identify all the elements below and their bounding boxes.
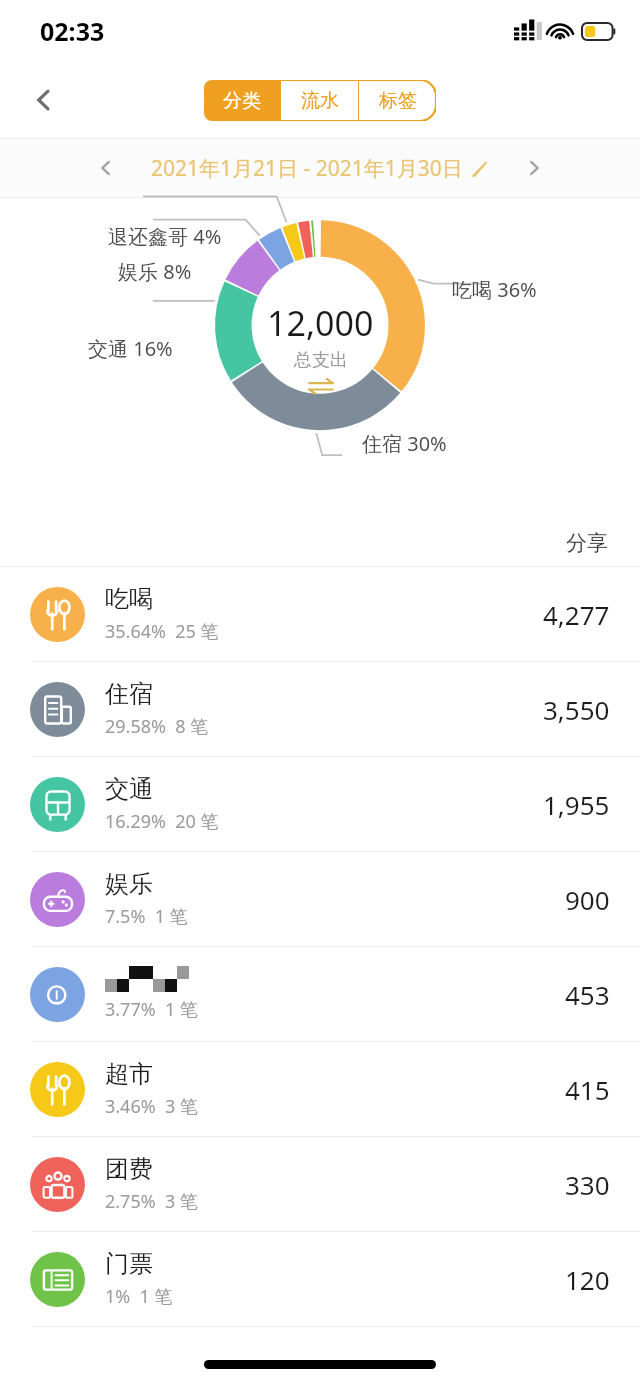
staticText: 3.46% 3 笔 <box>105 1094 199 1119</box>
staticText: 1% 1 笔 <box>105 1284 173 1309</box>
button[interactable]: 标签 <box>359 80 436 121</box>
button[interactable]: 门票 <box>0 1232 640 1326</box>
button[interactable]: 3.77% 1 笔 <box>0 947 640 1041</box>
staticText: 1,955 <box>543 787 610 822</box>
staticText: 02:33 <box>40 14 105 48</box>
staticText: 吃喝 36% <box>452 276 537 303</box>
button[interactable]: 2021年1月21日 - 2021年1月30日 <box>151 154 489 183</box>
staticText: 3.77% 1 笔 <box>105 997 199 1022</box>
staticText: 分类 <box>223 89 261 113</box>
staticText: 16.29% 20 笔 <box>105 809 219 834</box>
button[interactable]: 分享 <box>566 530 608 556</box>
staticText: 团费 <box>105 1154 153 1184</box>
staticText: 330 <box>565 1167 610 1202</box>
staticText: 7.5% 1 笔 <box>105 904 188 929</box>
staticText: 29.58% 8 笔 <box>105 714 209 739</box>
staticText: 标签 <box>379 89 417 113</box>
staticText: 娱乐 <box>105 869 153 899</box>
button[interactable]: 流水 <box>281 80 358 121</box>
staticText: 娱乐 8% <box>118 258 192 285</box>
button[interactable]: 超市 <box>0 1042 640 1136</box>
staticText: 4,277 <box>543 597 610 632</box>
button[interactable]: 住宿 <box>0 662 640 756</box>
button[interactable]: 娱乐 <box>0 852 640 946</box>
staticText: 超市 <box>105 1059 153 1089</box>
staticText: 门票 <box>105 1249 153 1279</box>
staticText: 流水 <box>301 89 339 113</box>
staticText: 2.75% 3 笔 <box>105 1189 199 1214</box>
button[interactable]: 分类 <box>204 80 280 121</box>
staticText: 35.64% 25 笔 <box>105 619 219 644</box>
staticText: 3,550 <box>543 692 610 727</box>
button[interactable]: 交通 <box>0 757 640 851</box>
staticText: 2021年1月21日 - 2021年1月30日 <box>151 154 463 183</box>
button[interactable]: Previous period <box>86 148 126 188</box>
button[interactable]: Back <box>20 76 68 124</box>
button[interactable]: 吃喝 <box>0 567 640 661</box>
staticText: 交通 <box>105 774 153 804</box>
staticText: 12,000 <box>267 300 374 346</box>
staticText: 交通 16% <box>88 335 173 362</box>
staticText: 415 <box>565 1072 610 1107</box>
staticText: 900 <box>565 882 610 917</box>
staticText: 吃喝 <box>105 584 153 614</box>
staticText: 住宿 <box>105 679 153 709</box>
button[interactable]: Next period <box>514 148 554 188</box>
staticText: 住宿 30% <box>362 430 447 457</box>
staticText: 120 <box>565 1262 610 1297</box>
button[interactable]: 团费 <box>0 1137 640 1231</box>
staticText: 总支出 <box>294 349 348 372</box>
staticText: 453 <box>565 977 610 1012</box>
staticText: 退还鑫哥 4% <box>108 223 222 250</box>
